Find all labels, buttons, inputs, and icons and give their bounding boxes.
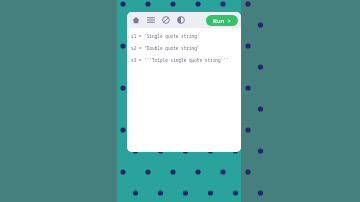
staticText: s3 = '''Triple single quote string''': [131, 57, 229, 63]
staticText: Run: [213, 17, 225, 25]
staticText: s1 = 'Single quote string': [131, 33, 200, 39]
button[interactable]: Theme: [175, 14, 187, 26]
button[interactable]: Run: [206, 15, 238, 26]
button[interactable]: Clear: [160, 14, 172, 26]
staticText: s2 = "Double quote string": [131, 45, 200, 51]
button[interactable]: Menu: [145, 14, 157, 26]
button[interactable]: Home: [130, 14, 142, 26]
